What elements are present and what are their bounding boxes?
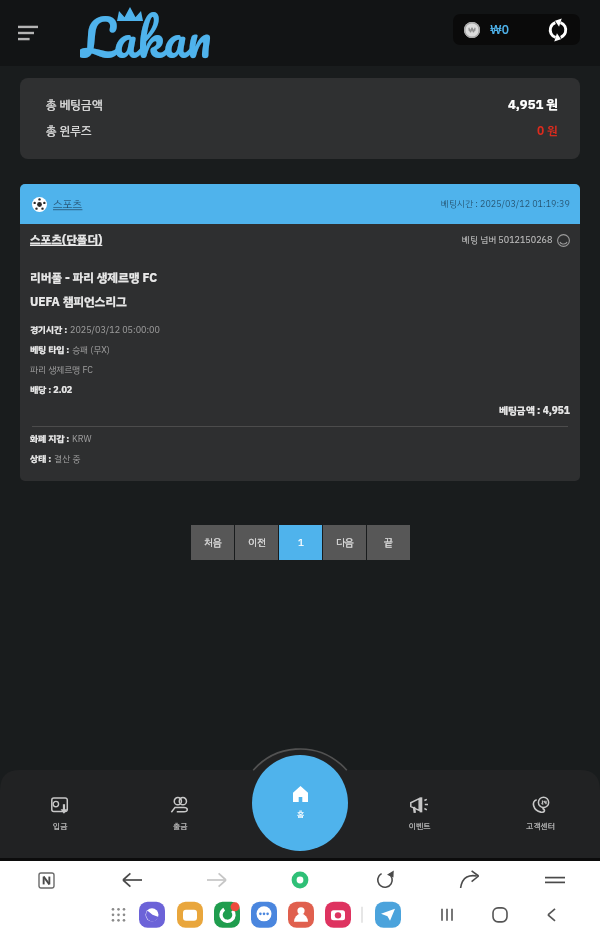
- staticText: 리버풀 - 파리 생제르맹 FC: [30, 269, 157, 287]
- staticText: 홈: [297, 808, 305, 820]
- staticText: Lakan: [80, 0, 212, 59]
- button[interactable]: Home screen: [489, 899, 511, 932]
- button[interactable]: ₩0: [453, 14, 580, 45]
- staticText: 고객센터: [526, 820, 555, 832]
- button[interactable]: Naver: [29, 861, 63, 899]
- button[interactable]: 처음: [191, 525, 234, 560]
- staticText: 총 윈루즈: [46, 122, 92, 140]
- staticText: UEFA 챔피언스리그: [30, 293, 127, 311]
- button[interactable]: Menu: [538, 861, 572, 899]
- staticText: 입금: [53, 820, 68, 832]
- button[interactable]: Recents: [434, 899, 456, 932]
- staticText: 처음: [204, 535, 222, 550]
- staticText: 상태 :: [30, 452, 54, 466]
- staticText: 배당 : 2.02: [30, 383, 73, 397]
- button[interactable]: 고객센터: [480, 788, 600, 840]
- staticText: 파리 생제르맹 FC: [30, 363, 93, 377]
- staticText: 출금: [173, 820, 188, 832]
- other: Copy: [557, 234, 570, 247]
- button[interactable]: Back: [541, 899, 563, 932]
- button[interactable]: Back: [115, 861, 149, 899]
- staticText: 2025/03/12 05:00:00: [70, 323, 160, 337]
- button[interactable]: Reload: [368, 861, 402, 899]
- other: Refresh: [545, 17, 571, 43]
- button[interactable]: 출금: [120, 789, 240, 840]
- staticText: KRW: [72, 432, 92, 446]
- staticText: 승패 (무X): [72, 343, 110, 357]
- staticText: 1: [298, 535, 304, 550]
- staticText: 스포츠: [53, 196, 83, 213]
- staticText: 화폐 지갑 :: [30, 432, 72, 446]
- staticText: 0 원: [537, 122, 558, 140]
- staticText: 결산 중: [54, 452, 81, 466]
- button[interactable]: Menu: [8, 13, 48, 53]
- staticText: 다음: [336, 535, 354, 550]
- button[interactable]: Forward: [200, 861, 234, 899]
- staticText: 이벤트: [409, 820, 431, 832]
- button[interactable]: 입금: [0, 789, 120, 840]
- staticText: 베팅 타입 :: [30, 343, 72, 357]
- button[interactable]: Home: [283, 861, 317, 899]
- staticText: 베팅금액 : 4,951: [499, 403, 570, 418]
- staticText: 이전: [248, 535, 266, 550]
- staticText: 베팅시간 : 2025/03/12 01:19:39: [441, 197, 570, 211]
- staticText: 베팅 넘버 5012150268: [462, 233, 553, 247]
- button[interactable]: 이전: [235, 525, 278, 560]
- button[interactable]: 끝: [367, 525, 410, 560]
- button[interactable]: 다음: [323, 525, 366, 560]
- button[interactable]: Share: [453, 861, 487, 899]
- staticText: 총 베팅금액: [46, 96, 103, 114]
- staticText: 끝: [384, 535, 393, 550]
- button[interactable]: 이벤트: [360, 789, 480, 840]
- button[interactable]: 홈: [252, 755, 348, 851]
- staticText: ₩0: [490, 21, 509, 39]
- staticText: 4,951 원: [508, 95, 558, 115]
- button[interactable]: 1: [279, 525, 322, 560]
- staticText: 경기시간 :: [30, 323, 70, 337]
- staticText: 스포츠(단폴더): [30, 231, 103, 249]
